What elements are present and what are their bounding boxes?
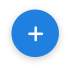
button[interactable]: Add: [11, 10, 59, 57]
